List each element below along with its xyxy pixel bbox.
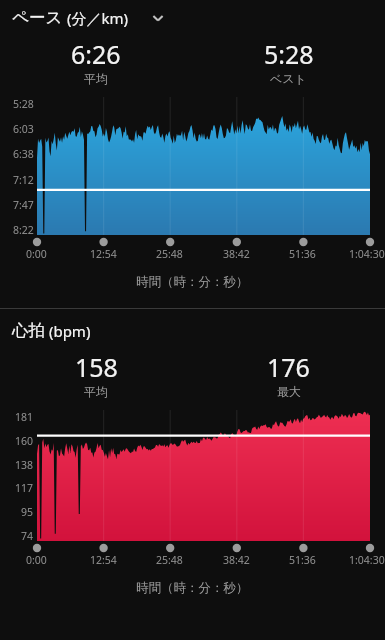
staticText: 時間（時：分：秒）	[136, 580, 249, 596]
staticText: 1:04:30	[349, 553, 385, 567]
staticText: 0:00	[26, 553, 47, 567]
staticText: 6:26	[71, 37, 121, 71]
staticText: 6:03	[13, 122, 34, 134]
staticText: 25:48	[156, 247, 183, 261]
staticText: 176	[267, 350, 310, 384]
staticText: 12:54	[90, 553, 117, 567]
staticText: (分／km)	[63, 8, 128, 28]
staticText: 38:42	[223, 553, 250, 567]
staticText: 0:00	[26, 247, 47, 261]
staticText: 5:28	[264, 37, 314, 71]
staticText: 平均	[84, 384, 108, 399]
staticText: 7:47	[13, 198, 34, 210]
staticText: 51:36	[289, 553, 316, 567]
staticText: 138	[15, 458, 34, 470]
staticText: (bpm)	[45, 321, 91, 341]
staticText: 平均	[84, 71, 108, 86]
staticText: 7:12	[13, 173, 34, 185]
staticText: 最大	[277, 384, 301, 399]
staticText: 時間（時：分：秒）	[136, 274, 249, 290]
staticText: ベスト	[270, 71, 307, 86]
staticText: 181	[15, 410, 34, 422]
staticText: 74	[21, 529, 34, 541]
staticText: 51:36	[289, 247, 316, 261]
staticText: 5:28	[13, 97, 34, 109]
staticText: 6:38	[13, 147, 34, 159]
staticText: 1:04:30	[349, 247, 385, 261]
other: Change metric	[148, 8, 168, 28]
staticText: 38:42	[223, 247, 250, 261]
staticText: 8:22	[13, 223, 34, 235]
staticText: 160	[15, 434, 34, 446]
staticText: ペース	[12, 7, 63, 28]
staticText: 心拍	[12, 320, 45, 341]
button[interactable]: ペース	[0, 7, 385, 28]
staticText: 117	[15, 481, 34, 493]
staticText: 12:54	[90, 247, 117, 261]
staticText: 95	[21, 505, 34, 517]
staticText: 158	[75, 350, 118, 384]
staticText: 25:48	[156, 553, 183, 567]
